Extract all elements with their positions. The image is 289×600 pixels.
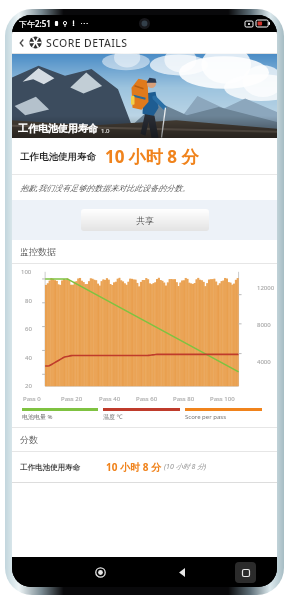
staticText: 8000 xyxy=(257,321,271,329)
button[interactable]: 工作电池使用寿命 xyxy=(12,452,277,482)
staticText: ⋯ xyxy=(80,19,88,28)
staticText: 共享 xyxy=(136,215,154,226)
staticText: 20 xyxy=(25,382,32,390)
staticText: Pass 40 xyxy=(99,395,121,403)
staticText: Pass 60 xyxy=(136,395,158,403)
button[interactable]: Home xyxy=(89,561,111,583)
staticText: 监控数据 xyxy=(20,246,56,257)
staticText: SCORE DETAILS xyxy=(46,36,128,50)
staticText: 10 小时 8 分 xyxy=(105,145,199,168)
staticText: 10 小时 8 分 xyxy=(106,460,161,474)
button[interactable]: 共享 xyxy=(81,209,209,231)
staticText: 80 xyxy=(25,297,32,305)
button[interactable]: Back xyxy=(171,561,193,583)
staticText: 工作电池使用寿命 xyxy=(20,463,80,472)
staticText: Score per pass xyxy=(185,413,227,421)
staticText: 分数 xyxy=(20,434,38,445)
staticText: 1.0 xyxy=(101,127,110,135)
staticText: 60 xyxy=(25,325,32,333)
staticText: Pass 0 xyxy=(23,395,41,403)
staticText: Pass 80 xyxy=(173,395,195,403)
staticText: 100 xyxy=(21,268,32,276)
staticText: 12000 xyxy=(257,284,275,292)
staticText: Pass 20 xyxy=(61,395,83,403)
staticText: 工作电池使用寿命 xyxy=(20,151,96,163)
staticText: 工作电池使用寿命 xyxy=(18,122,98,135)
staticText: 电池电量 % xyxy=(22,413,53,421)
staticText: (10 小时 8 分) xyxy=(164,462,207,472)
staticText: Pass 100 xyxy=(210,395,235,403)
button[interactable]: Recents xyxy=(235,562,256,583)
staticText: 下午2:51 xyxy=(19,18,51,29)
button[interactable]: Back xyxy=(15,36,29,50)
staticText: 40 xyxy=(25,354,32,362)
staticText: 温度 ℃ xyxy=(103,413,123,421)
staticText: 4000 xyxy=(257,358,271,366)
staticText: 抱歉,我们没有足够的数据来对比此设备的分数。 xyxy=(20,182,191,193)
